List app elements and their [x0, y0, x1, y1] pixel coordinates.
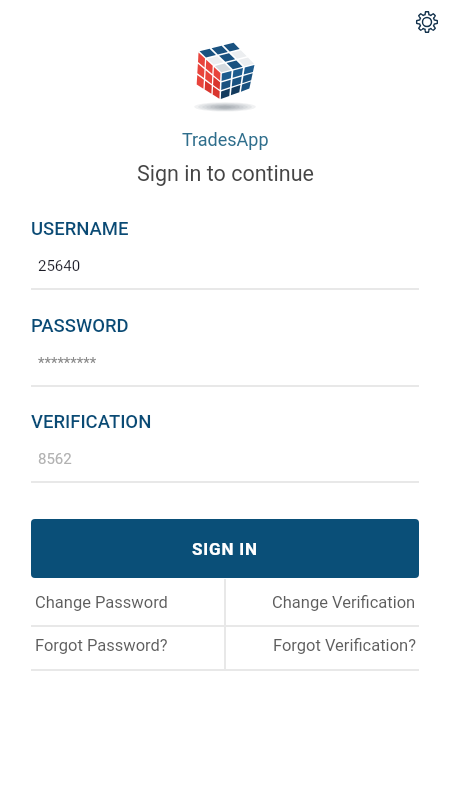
- staticText: USERNAME: [31, 218, 129, 240]
- staticText: Forgot Verification?: [273, 636, 416, 655]
- button[interactable]: Change Verification: [226, 579, 419, 625]
- staticText: Change Password: [35, 593, 168, 612]
- button[interactable]: Settings: [410, 5, 444, 39]
- staticText: Change Verification: [272, 593, 416, 612]
- button[interactable]: Change Password: [31, 579, 224, 625]
- staticText: PASSWORD: [31, 315, 129, 337]
- button[interactable]: SIGN IN: [31, 519, 419, 578]
- button[interactable]: Forgot Password?: [31, 627, 224, 669]
- staticText: 25640: [38, 257, 81, 275]
- staticText: *********: [38, 354, 97, 372]
- staticText: 8562: [38, 450, 72, 468]
- staticText: TradesApp: [182, 129, 269, 150]
- staticText: Forgot Password?: [35, 636, 168, 655]
- staticText: SIGN IN: [192, 539, 258, 559]
- staticText: VERIFICATION: [31, 411, 152, 433]
- button[interactable]: Forgot Verification?: [226, 627, 419, 669]
- staticText: Sign in to continue: [137, 161, 314, 186]
